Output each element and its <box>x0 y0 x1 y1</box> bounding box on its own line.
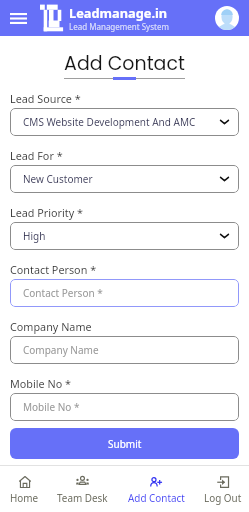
staticText: Log Out <box>204 491 242 504</box>
button[interactable]: Team Desk <box>49 466 116 504</box>
staticText: Lead Source * <box>10 91 81 106</box>
staticText: Lead Management System <box>69 21 169 32</box>
staticText: CMS Website Development And AMC <box>23 115 196 129</box>
button[interactable]: High <box>10 222 239 250</box>
staticText: Leadmanage.in <box>69 4 168 21</box>
button[interactable]: Company Name <box>10 336 239 364</box>
staticText: Submit <box>108 437 142 451</box>
staticText: Add Contact <box>128 491 185 504</box>
button[interactable]: Submit <box>10 428 239 459</box>
staticText: Lead Priority * <box>10 205 83 220</box>
staticText: New Customer <box>23 172 93 186</box>
button[interactable]: Menu <box>7 7 29 29</box>
button[interactable]: Add Contact <box>116 466 196 504</box>
button[interactable]: Contact Person * <box>10 279 239 307</box>
staticText: Home <box>10 491 39 504</box>
staticText: Mobile No * <box>10 376 71 391</box>
staticText: Lead For * <box>10 148 63 163</box>
button[interactable]: CMS Website Development And AMC <box>10 108 239 136</box>
button[interactable]: Home <box>0 466 49 504</box>
staticText: Mobile No * <box>23 400 80 414</box>
button[interactable]: Mobile No * <box>10 393 239 421</box>
button[interactable]: Profile <box>215 6 239 30</box>
staticText: Add Contact <box>0 50 249 77</box>
staticText: Contact Person * <box>23 286 103 300</box>
staticText: High <box>23 229 46 243</box>
staticText: Contact Person * <box>10 262 97 277</box>
staticText: Company Name <box>23 343 99 357</box>
button[interactable]: Log Out <box>196 466 249 504</box>
button[interactable]: New Customer <box>10 165 239 193</box>
staticText: Team Desk <box>57 491 108 504</box>
staticText: Company Name <box>10 319 92 334</box>
